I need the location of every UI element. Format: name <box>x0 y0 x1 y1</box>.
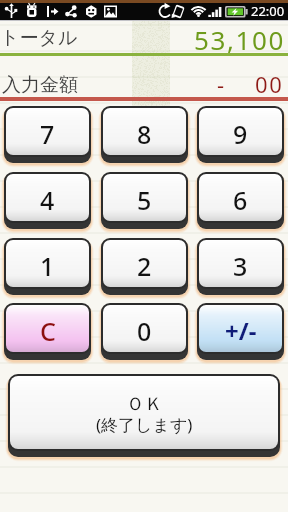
staticText: 0 <box>137 314 152 348</box>
button[interactable]: 1 <box>6 240 89 287</box>
button[interactable]: 6 <box>199 174 282 221</box>
staticText: 2 <box>137 249 152 283</box>
staticText: 1 <box>40 249 55 283</box>
button[interactable]: 5 <box>103 174 186 221</box>
staticText: 3 <box>233 249 248 283</box>
staticText: 9 <box>233 117 248 151</box>
button[interactable]: 9 <box>199 108 282 155</box>
staticText: (終了します) <box>96 413 193 436</box>
staticText: 7 <box>40 117 55 151</box>
staticText: C <box>40 314 56 348</box>
staticText: 5 <box>137 183 152 217</box>
button[interactable]: C <box>6 305 89 352</box>
staticText: +/- <box>225 314 257 347</box>
button[interactable]: ＯＫ <box>10 376 278 449</box>
staticText: 6 <box>233 183 248 217</box>
button[interactable]: トータル <box>0 26 78 50</box>
button[interactable]: 8 <box>103 108 186 155</box>
staticText: 4 <box>40 183 55 217</box>
staticText: ＯＫ <box>126 393 163 416</box>
button[interactable]: 入力金額 <box>2 73 78 97</box>
staticText: - 00 <box>217 69 284 99</box>
staticText: 22:00 <box>251 2 285 19</box>
button[interactable]: 7 <box>6 108 89 155</box>
button[interactable]: 0 <box>103 305 186 352</box>
button[interactable]: 2 <box>103 240 186 287</box>
button[interactable]: 4 <box>6 174 89 221</box>
button[interactable]: 3 <box>199 240 282 287</box>
staticText: 8 <box>137 117 152 151</box>
staticText: 53,100 <box>194 22 285 57</box>
button[interactable]: +/- <box>199 305 282 352</box>
